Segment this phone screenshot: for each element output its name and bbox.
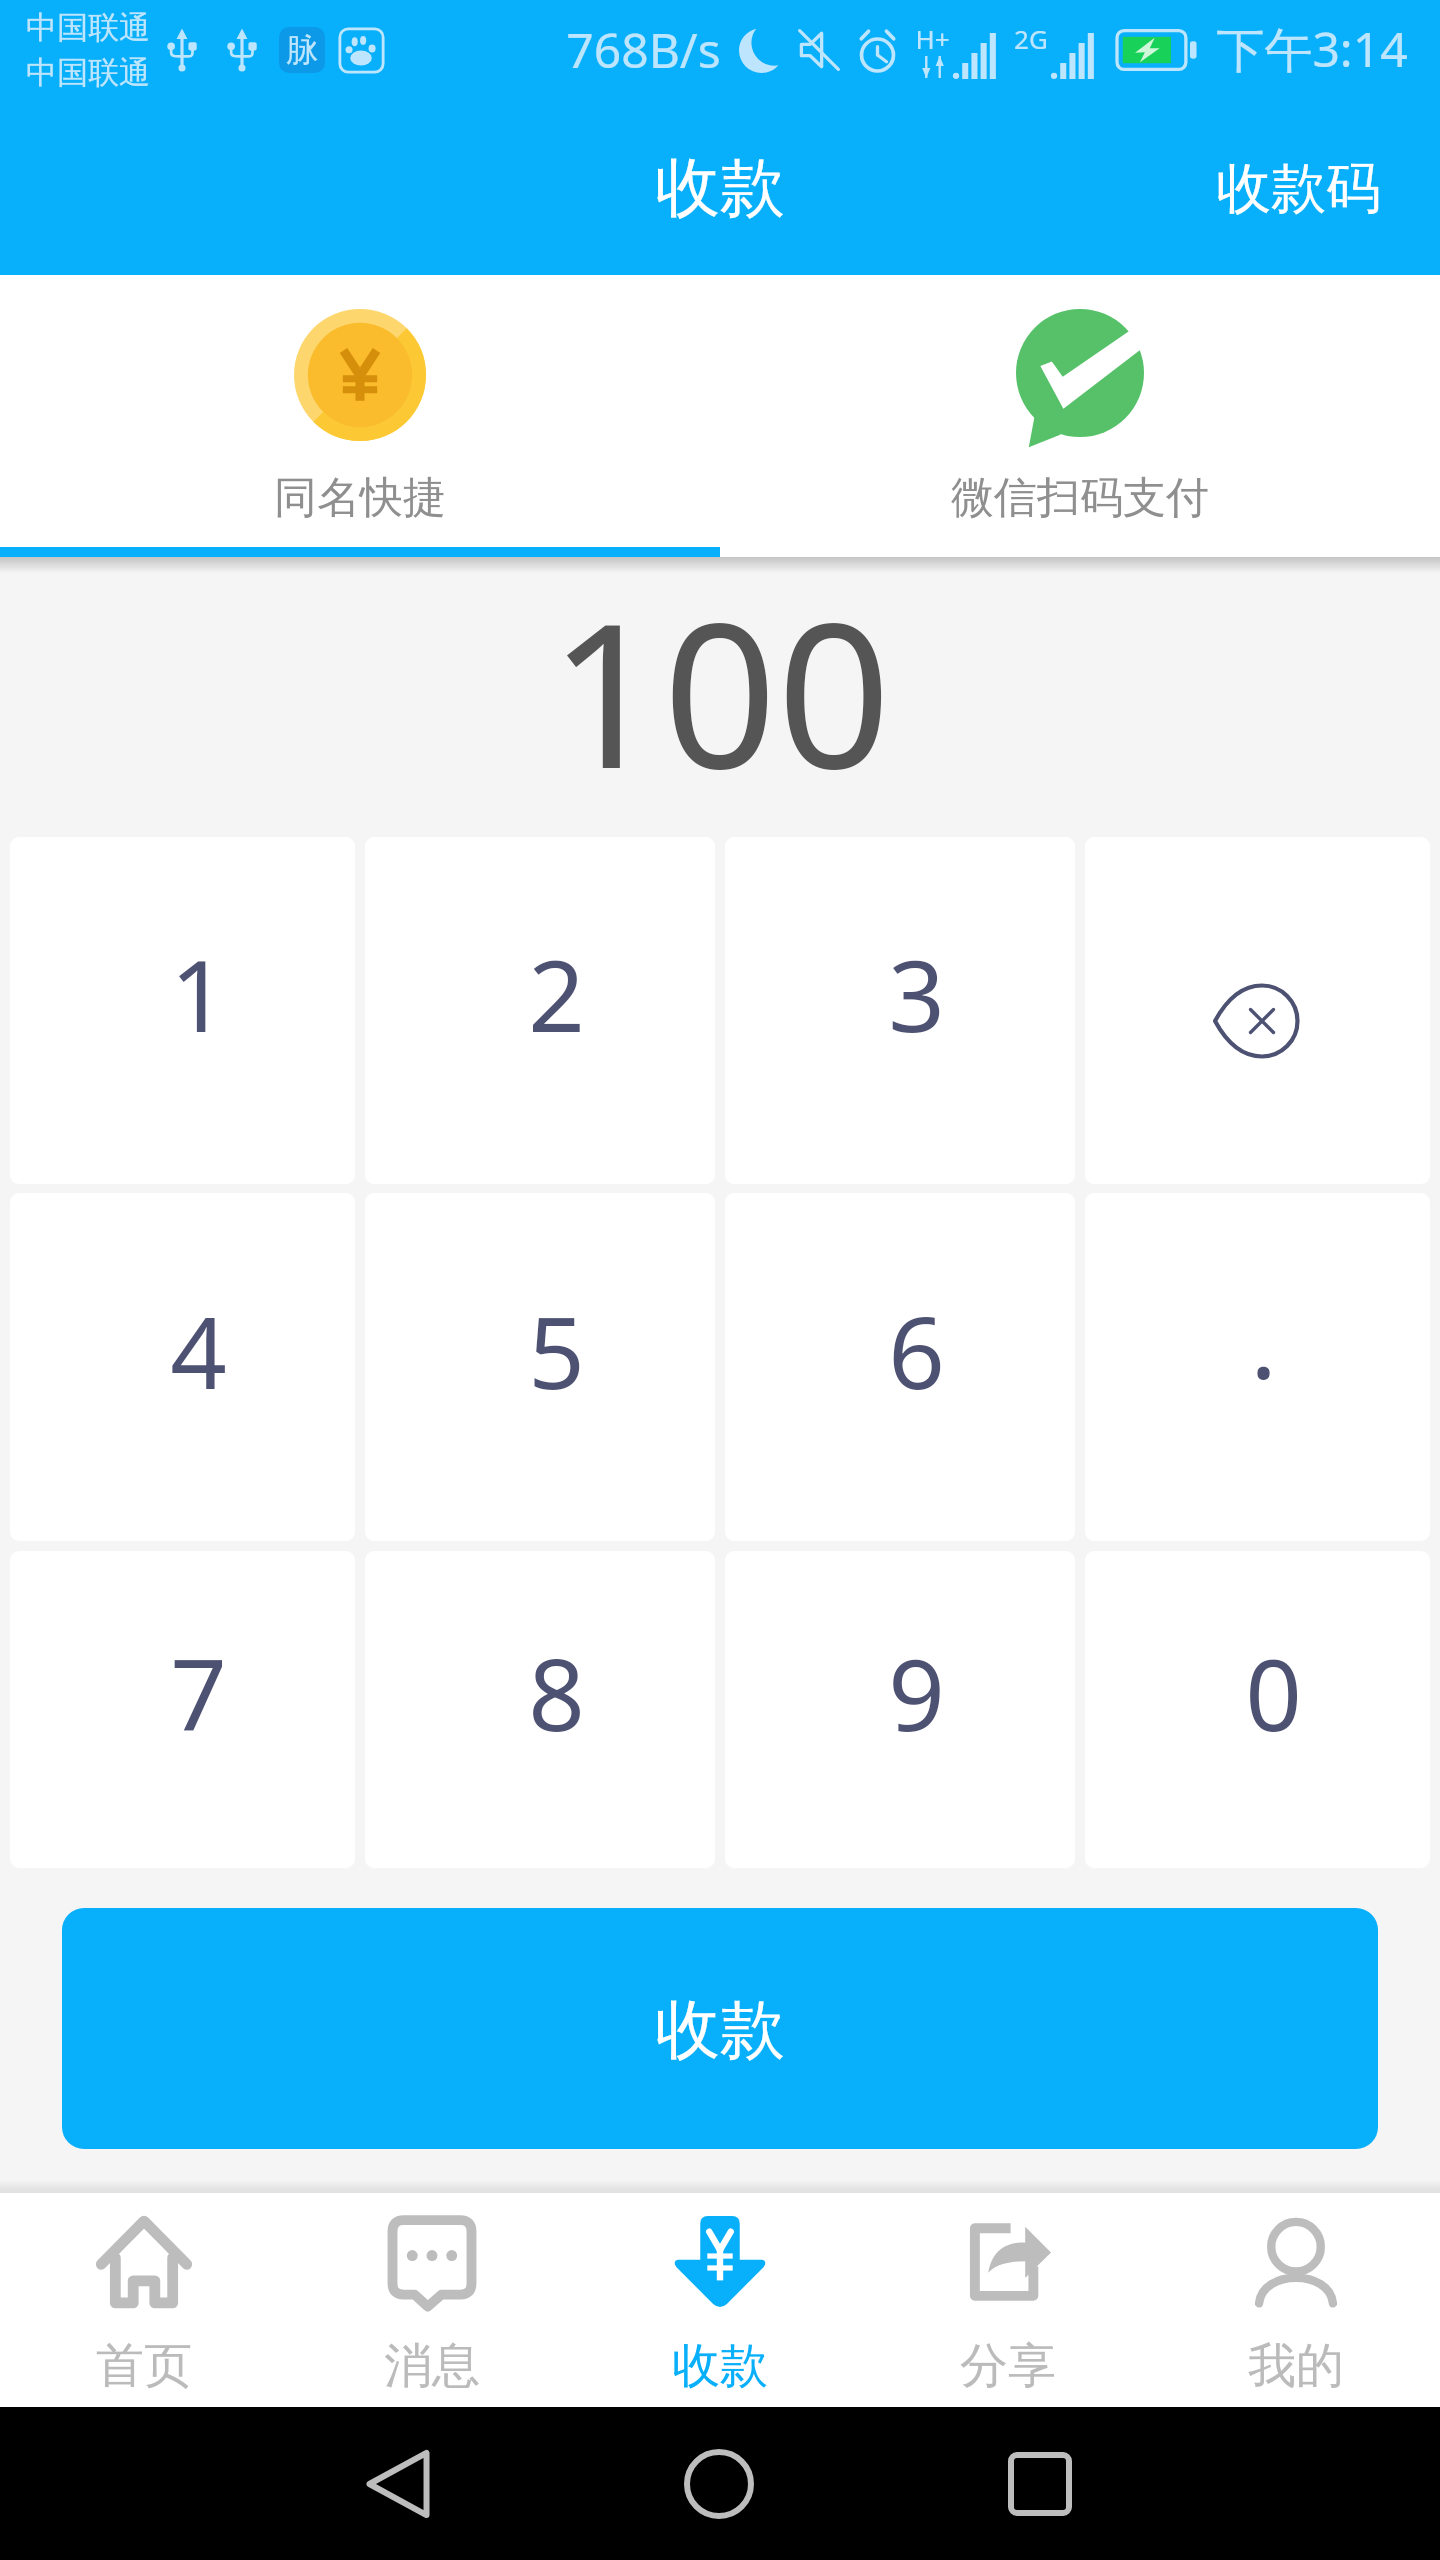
staticText: 0	[1245, 1625, 1302, 1760]
button[interactable]: Recents	[970, 2407, 1110, 2560]
staticText: 4	[170, 1283, 227, 1418]
button[interactable]: 收款	[62, 1908, 1378, 2149]
staticText: 收款	[655, 147, 785, 229]
staticText: 中国联通	[26, 53, 150, 92]
staticText: 7	[170, 1625, 227, 1760]
staticText: H+	[915, 21, 950, 56]
button[interactable]: 同名快捷	[0, 275, 720, 557]
staticText: 消息	[384, 2336, 480, 2396]
button[interactable]: 我的	[1152, 2190, 1440, 2407]
staticText: 收款	[672, 2336, 768, 2396]
staticText: 768B/s	[566, 17, 721, 82]
button[interactable]: Backspace	[1085, 837, 1430, 1184]
button[interactable]: 6	[725, 1193, 1075, 1541]
staticText: 首页	[96, 2336, 192, 2396]
button[interactable]: 7	[10, 1551, 355, 1868]
button[interactable]: 收款码	[1202, 137, 1395, 238]
staticText: 同名快捷	[274, 471, 446, 525]
staticText: 下午3:14	[1216, 16, 1408, 82]
staticText: 2	[528, 926, 585, 1061]
button[interactable]: 首页	[0, 2190, 288, 2407]
button[interactable]: 1	[10, 837, 355, 1184]
staticText: 5	[528, 1283, 585, 1418]
staticText: 收款码	[1216, 154, 1381, 223]
button[interactable]: 2	[365, 837, 715, 1184]
button[interactable]: .	[1085, 1193, 1430, 1541]
staticText: 8	[528, 1625, 585, 1760]
button[interactable]: Home	[649, 2407, 789, 2560]
staticText: 6	[888, 1283, 945, 1418]
button[interactable]: Back	[328, 2407, 468, 2560]
staticText: 分享	[960, 2336, 1056, 2396]
button[interactable]: 5	[365, 1193, 715, 1541]
button[interactable]: 0	[1085, 1551, 1430, 1868]
staticText: 2G	[1014, 21, 1048, 56]
staticText: 1	[170, 926, 227, 1061]
button[interactable]: 收款	[576, 2190, 864, 2407]
staticText: 9	[888, 1625, 945, 1760]
staticText: 我的	[1248, 2336, 1344, 2396]
button[interactable]: 9	[725, 1551, 1075, 1868]
button[interactable]: 消息	[288, 2190, 576, 2407]
button[interactable]: 分享	[864, 2190, 1152, 2407]
staticText: 微信扫码支付	[951, 471, 1209, 525]
staticText: 中国联通	[26, 8, 150, 47]
staticText: .	[1250, 1273, 1277, 1408]
staticText: 脉	[286, 30, 318, 70]
button[interactable]: 8	[365, 1551, 715, 1868]
button[interactable]: 4	[10, 1193, 355, 1541]
staticText: 收款	[655, 1989, 785, 2071]
button[interactable]: 3	[725, 837, 1075, 1184]
button[interactable]: 微信扫码支付	[720, 275, 1440, 557]
staticText: 100	[549, 555, 891, 826]
staticText: 3	[888, 926, 945, 1061]
